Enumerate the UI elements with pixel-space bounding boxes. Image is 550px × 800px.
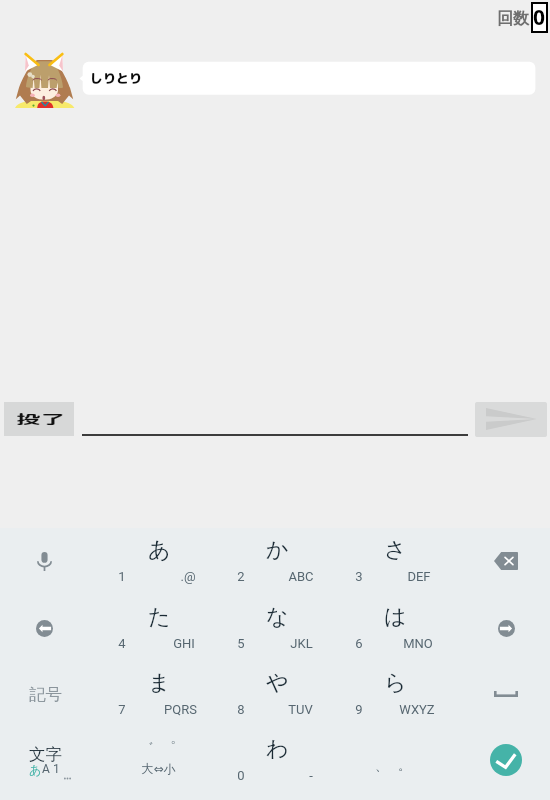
staticText: .@ [180, 569, 196, 584]
button[interactable]: Space [466, 664, 546, 724]
button[interactable]: た [119, 595, 199, 639]
staticText: JKL [290, 636, 313, 651]
button[interactable]: Voice input [4, 531, 84, 591]
staticText: 1 [53, 762, 60, 776]
button[interactable]: Backspace [466, 531, 546, 591]
button[interactable]: Send [475, 402, 547, 437]
staticText: 8 [237, 702, 245, 717]
staticText: わ [266, 735, 289, 763]
button[interactable]: さ [355, 528, 435, 572]
staticText: さ [384, 536, 407, 564]
button[interactable]: ま [119, 661, 199, 705]
staticText: PQRS [164, 702, 197, 717]
button[interactable]: あ [119, 528, 199, 572]
button[interactable]: や [237, 661, 317, 705]
staticText: 。 [398, 757, 411, 773]
staticText: 投了 [16, 410, 67, 428]
staticText: A [42, 762, 50, 776]
button[interactable]: Previous character [4, 598, 84, 658]
button[interactable]: ら [355, 661, 435, 705]
button[interactable]: わ [237, 727, 317, 771]
staticText: WXYZ [399, 702, 435, 717]
staticText: あ [148, 536, 171, 564]
staticText: は [384, 603, 407, 631]
button[interactable]: Next character [466, 598, 546, 658]
staticText: TUV [288, 702, 313, 717]
staticText: 0 [533, 3, 546, 32]
staticText: あ [29, 762, 42, 777]
staticText: 1 [118, 569, 126, 584]
button[interactable]: 文字 [4, 730, 84, 786]
staticText: 9 [355, 702, 363, 717]
staticText: や [266, 669, 289, 697]
staticText: 記号 [29, 684, 62, 705]
staticText: DEF [407, 569, 431, 584]
staticText: 3 [355, 569, 363, 584]
staticText: 回数 [497, 9, 529, 29]
staticText: 7 [118, 702, 126, 717]
staticText: 6 [355, 636, 363, 651]
button[interactable]: か [237, 528, 317, 572]
staticText: MNO [403, 636, 433, 651]
staticText: 、 [375, 757, 388, 773]
button[interactable]: は [355, 595, 435, 639]
staticText: 4 [118, 636, 126, 651]
staticText: ら [384, 669, 407, 697]
staticText: な [266, 603, 289, 631]
staticText: しりとり [90, 69, 143, 87]
staticText: ゜ [162, 739, 176, 755]
button[interactable]: Enter [466, 730, 546, 790]
staticText: 大⇔小 [141, 761, 176, 776]
staticText: 2 [237, 569, 245, 584]
staticText: - [309, 768, 313, 783]
staticText: か [266, 536, 289, 564]
staticText: ABC [288, 569, 314, 584]
button[interactable]: な [237, 595, 317, 639]
staticText: た [148, 603, 171, 631]
button[interactable]: 投了 [4, 402, 74, 436]
staticText: GHI [173, 636, 195, 651]
staticText: ゛ [140, 739, 154, 755]
staticText: ま [148, 669, 171, 697]
staticText: 文字 [29, 744, 62, 765]
staticText: 0 [237, 768, 245, 783]
staticText: 5 [237, 636, 245, 651]
button[interactable]: 記号 [15, 682, 75, 706]
